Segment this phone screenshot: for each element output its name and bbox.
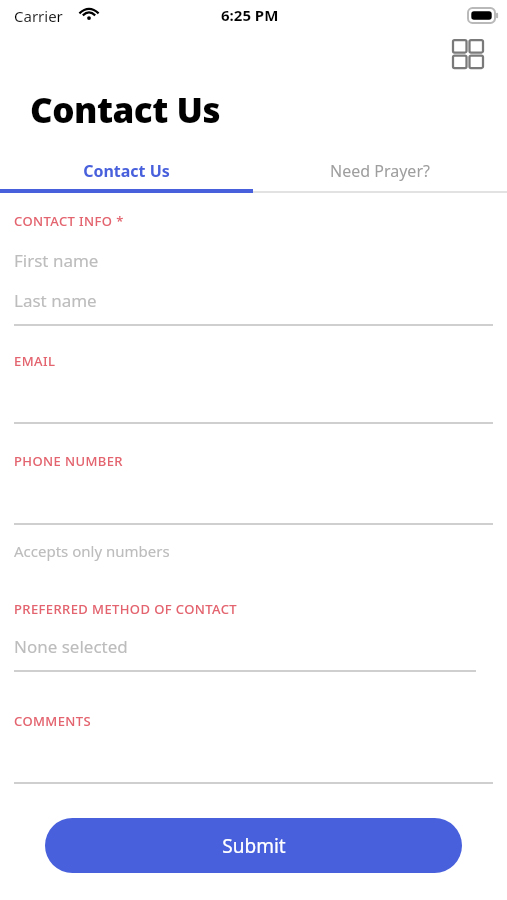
staticText: Last name — [14, 289, 97, 312]
button[interactable]: Last name — [14, 286, 493, 318]
staticText: Contact Us — [30, 86, 221, 134]
staticText: 6:25 PM — [221, 5, 279, 25]
staticText: CONTACT INFO * — [14, 212, 124, 230]
button[interactable]: Submit — [45, 818, 462, 873]
staticText: Carrier — [14, 6, 63, 26]
staticText: First name — [14, 249, 99, 272]
button[interactable]: Contact Us — [0, 149, 253, 193]
staticText: Contact Us — [83, 160, 170, 182]
staticText: COMMENTS — [14, 712, 92, 730]
staticText: Accepts only numbers — [14, 541, 170, 561]
button[interactable]: First name — [14, 246, 493, 278]
staticText: EMAIL — [14, 352, 56, 370]
staticText: Submit — [222, 833, 286, 859]
button[interactable]: None selected — [14, 632, 476, 664]
staticText: PHONE NUMBER — [14, 452, 123, 470]
button[interactable]: Dashboard — [445, 31, 491, 77]
staticText: PREFERRED METHOD OF CONTACT — [14, 600, 238, 618]
staticText: None selected — [14, 635, 128, 658]
button[interactable]: Need Prayer? — [253, 149, 507, 193]
staticText: Need Prayer? — [330, 160, 430, 182]
